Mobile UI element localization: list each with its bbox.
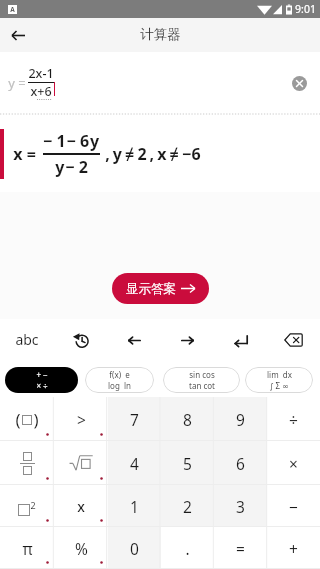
button[interactable]: lim dx <box>245 367 313 393</box>
staticText: lim dx <box>267 369 292 380</box>
staticText: sin cos <box>189 369 215 380</box>
staticText: ∫ Σ ∞ <box>269 380 289 391</box>
staticText: × ÷ <box>36 380 48 391</box>
button[interactable]: ÷ <box>267 397 320 441</box>
staticText: 9:01 <box>295 2 316 16</box>
staticText: x = <box>13 143 36 165</box>
button[interactable] <box>0 441 54 485</box>
button[interactable]: . <box>161 527 214 569</box>
button[interactable]: π <box>0 527 54 569</box>
staticText: × <box>289 453 298 474</box>
button[interactable]: Backspace <box>267 319 320 361</box>
button[interactable]: 9 <box>214 397 267 441</box>
button[interactable]: Enter <box>214 319 267 361</box>
button[interactable]: Move right <box>161 319 214 361</box>
button[interactable]: 5 <box>161 441 214 485</box>
staticText: x <box>77 497 85 516</box>
button[interactable]: 8 <box>161 397 214 441</box>
button[interactable]: History <box>54 319 108 361</box>
button[interactable]: ( <box>0 397 54 441</box>
staticText: y = <box>8 74 26 92</box>
button[interactable]: Back <box>7 24 30 47</box>
button[interactable]: 显示答案 <box>112 273 209 304</box>
staticText: , y ≠ 2 , x ≠ −6 <box>105 143 201 165</box>
staticText: x+6 <box>30 83 52 100</box>
staticText: ÷ <box>289 409 298 430</box>
button[interactable]: 2 <box>0 485 54 527</box>
staticText: > <box>77 409 86 430</box>
button[interactable]: > <box>54 397 108 441</box>
button[interactable]: 6 <box>214 441 267 485</box>
staticText: A <box>10 5 15 14</box>
staticText: + <box>289 538 298 559</box>
button[interactable]: 1 <box>108 485 161 527</box>
staticText: 2x-1 <box>28 65 54 82</box>
button[interactable]: = <box>214 527 267 569</box>
button[interactable]: sin cos <box>163 367 240 393</box>
staticText: 显示答案 <box>126 281 176 297</box>
staticText: 6 <box>236 453 245 474</box>
staticText: . <box>185 538 190 559</box>
button[interactable]: × <box>267 441 320 485</box>
button[interactable]: − <box>267 485 320 527</box>
staticText: 9 <box>236 409 245 430</box>
button[interactable]: Clear <box>289 73 309 93</box>
staticText: π <box>22 538 33 559</box>
button[interactable]: % <box>54 527 108 569</box>
staticText: f(x) e <box>109 369 130 380</box>
staticText: − <box>289 496 298 517</box>
button[interactable]: 0 <box>108 527 161 569</box>
button[interactable]: 3 <box>214 485 267 527</box>
button[interactable]: + <box>267 527 320 569</box>
button[interactable]: 2 <box>161 485 214 527</box>
button[interactable]: x <box>54 485 108 527</box>
staticText: ( <box>15 408 21 431</box>
staticText: log ln <box>108 380 131 391</box>
staticText: 4 <box>130 453 139 474</box>
button[interactable]: f(x) e <box>85 367 154 393</box>
staticText: 0 <box>130 538 139 559</box>
button[interactable]: 7 <box>108 397 161 441</box>
staticText: 计算器 <box>140 26 181 43</box>
staticText: 8 <box>183 409 192 430</box>
staticText: 2 <box>30 499 36 511</box>
staticText: = <box>236 538 245 559</box>
staticText: − 1− 6y <box>43 130 100 152</box>
staticText: 2 <box>183 496 192 517</box>
button[interactable]: 4 <box>108 441 161 485</box>
button[interactable] <box>54 441 108 485</box>
staticText: y− 2 <box>55 156 89 178</box>
staticText: tan cot <box>189 380 215 391</box>
staticText: 5 <box>183 453 192 474</box>
button[interactable]: abc <box>0 319 54 361</box>
staticText: % <box>75 538 88 559</box>
staticText: ) <box>33 408 39 431</box>
staticText: 1 <box>130 496 139 517</box>
button[interactable]: Move left <box>108 319 161 361</box>
staticText: 3 <box>236 496 245 517</box>
staticText: + − <box>36 369 48 380</box>
staticText: abc <box>15 330 39 349</box>
button[interactable]: + − <box>5 367 78 393</box>
staticText: 7 <box>130 409 139 430</box>
